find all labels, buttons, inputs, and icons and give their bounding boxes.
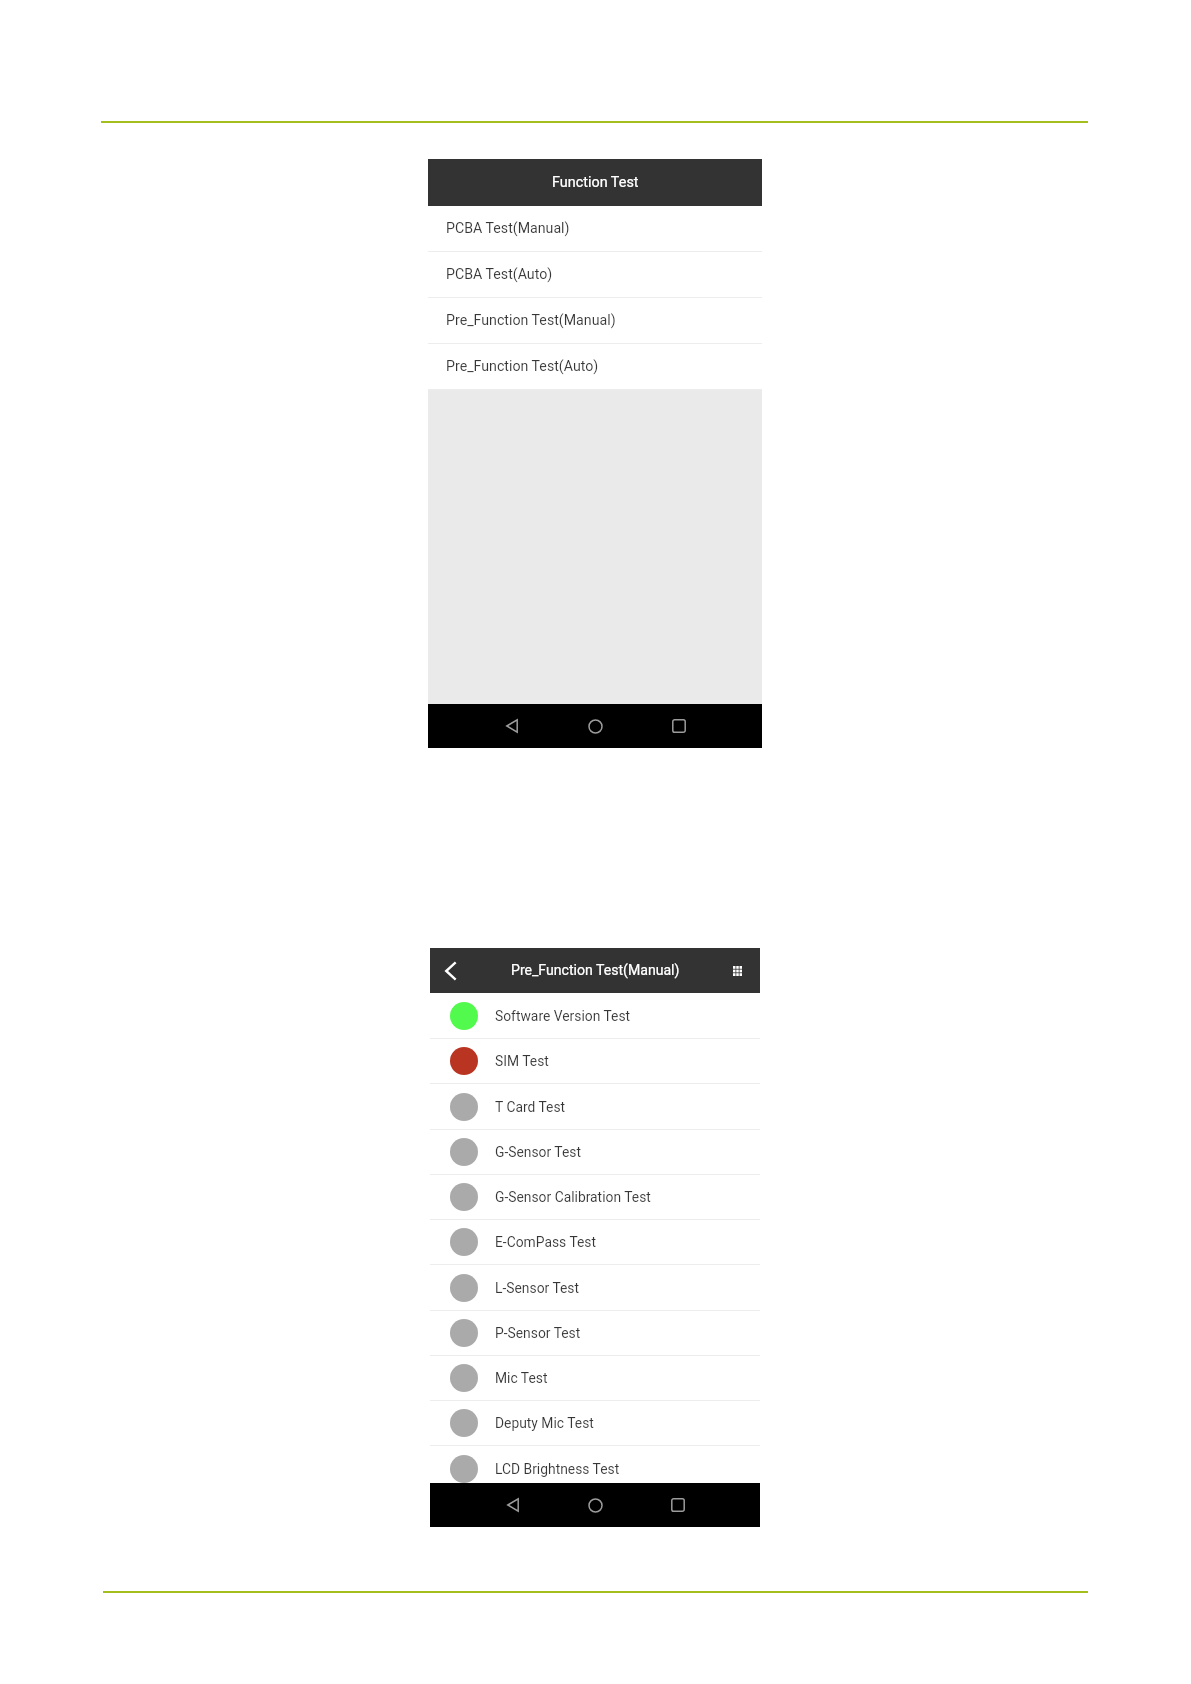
button[interactable]: Recents — [657, 704, 701, 748]
staticText: PCBA Test(Auto) — [446, 266, 553, 283]
button[interactable]: Pre_Function Test(Manual) — [428, 298, 762, 344]
staticText: Deputy Mic Test — [495, 1415, 594, 1431]
button[interactable]: T Card Test — [430, 1084, 760, 1130]
staticText: LCD Brightness Test — [495, 1461, 620, 1477]
button[interactable]: Home — [573, 704, 617, 748]
button[interactable]: L-Sensor Test — [430, 1265, 760, 1311]
staticText: P-Sensor Test — [495, 1325, 581, 1341]
button[interactable]: SIM Test — [430, 1039, 760, 1084]
button[interactable]: Back — [491, 1483, 535, 1527]
staticText: Pre_Function Test(Manual) — [446, 312, 616, 329]
button[interactable]: Menu — [720, 948, 760, 993]
staticText: L-Sensor Test — [495, 1280, 579, 1296]
button[interactable]: Back — [490, 704, 534, 748]
staticText: Function Test — [552, 174, 639, 191]
button[interactable]: Software Version Test — [430, 993, 760, 1039]
button[interactable]: Pre_Function Test(Auto) — [428, 344, 762, 390]
staticText: G-Sensor Test — [495, 1144, 581, 1160]
button[interactable]: G-Sensor Calibration Test — [430, 1175, 760, 1220]
button[interactable]: Function Test — [428, 159, 762, 206]
button[interactable]: G-Sensor Test — [430, 1130, 760, 1175]
button[interactable]: LCD Brightness Test — [430, 1446, 760, 1483]
button[interactable]: Mic Test — [430, 1356, 760, 1401]
button[interactable]: Back — [430, 948, 470, 993]
button[interactable]: E-ComPass Test — [430, 1220, 760, 1265]
staticText: SIM Test — [495, 1053, 549, 1069]
staticText: T Card Test — [495, 1099, 566, 1115]
button[interactable]: PCBA Test(Manual) — [428, 206, 762, 252]
button[interactable]: PCBA Test(Auto) — [428, 252, 762, 298]
staticText: G-Sensor Calibration Test — [495, 1189, 651, 1205]
staticText: Pre_Function Test(Auto) — [446, 358, 599, 375]
staticText: Mic Test — [495, 1370, 548, 1386]
button[interactable]: Recents — [656, 1483, 700, 1527]
staticText: Software Version Test — [495, 1008, 631, 1024]
button[interactable]: P-Sensor Test — [430, 1311, 760, 1356]
staticText: PCBA Test(Manual) — [446, 220, 570, 237]
staticText: E-ComPass Test — [495, 1234, 596, 1250]
button[interactable]: Deputy Mic Test — [430, 1401, 760, 1446]
staticText: Pre_Function Test(Manual) — [511, 962, 680, 979]
button[interactable]: Home — [573, 1483, 617, 1527]
